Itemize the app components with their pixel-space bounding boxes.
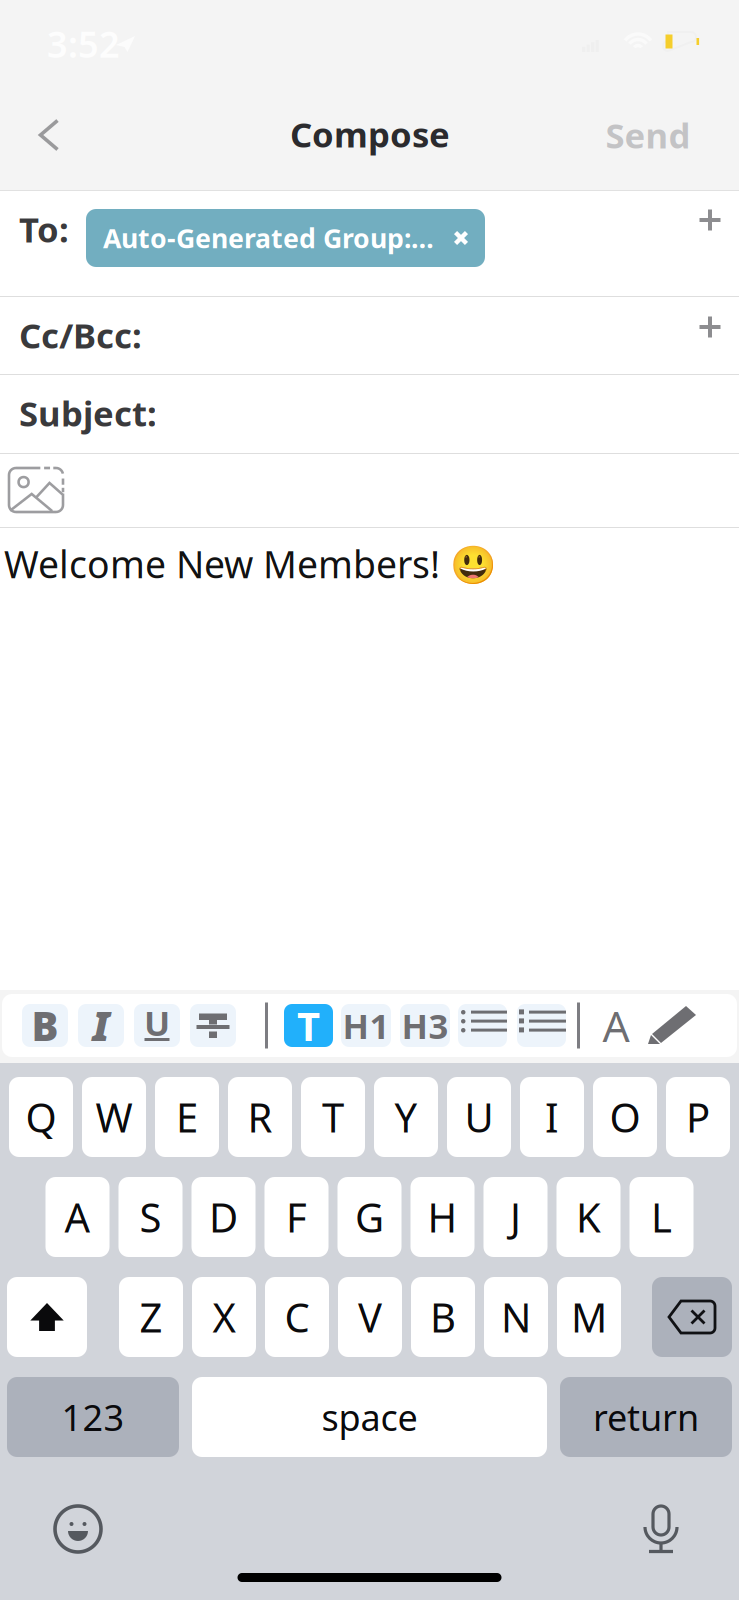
- button[interactable]: N: [484, 1277, 548, 1357]
- button[interactable]: 123: [7, 1377, 179, 1457]
- button[interactable]: G: [337, 1177, 401, 1257]
- staticText: I: [92, 999, 109, 1052]
- button[interactable]: Add Cc or Bcc: [675, 297, 739, 357]
- button[interactable]: P: [666, 1077, 730, 1157]
- staticText: S: [139, 1190, 161, 1243]
- button[interactable]: L: [629, 1177, 693, 1257]
- button[interactable]: H: [410, 1177, 474, 1257]
- staticText: J: [510, 1190, 521, 1243]
- staticText: L: [651, 1190, 672, 1243]
- button[interactable]: A: [45, 1177, 109, 1257]
- button[interactable]: B: [411, 1277, 475, 1357]
- staticText: Q: [25, 1090, 56, 1143]
- button[interactable]: H1: [341, 1004, 391, 1047]
- staticText: V: [358, 1290, 382, 1343]
- staticText: T: [322, 1090, 344, 1143]
- staticText: H: [427, 1190, 457, 1243]
- button[interactable]: V: [338, 1277, 402, 1357]
- button[interactable]: [458, 1004, 507, 1047]
- staticText: U: [144, 999, 170, 1045]
- button[interactable]: Q: [9, 1077, 73, 1157]
- staticText: R: [247, 1090, 272, 1143]
- staticText: A: [602, 997, 629, 1054]
- staticText: P: [686, 1090, 710, 1143]
- staticText: To:: [19, 206, 69, 252]
- button[interactable]: Insert photo: [0, 458, 72, 522]
- button[interactable]: T: [301, 1077, 365, 1157]
- staticText: A: [64, 1190, 90, 1243]
- staticText: return: [593, 1393, 699, 1441]
- button[interactable]: D: [191, 1177, 255, 1257]
- staticText: X: [212, 1290, 235, 1343]
- staticText: K: [576, 1190, 601, 1243]
- button[interactable]: M: [557, 1277, 621, 1357]
- staticText: Z: [139, 1290, 162, 1343]
- button[interactable]: [517, 1004, 566, 1047]
- staticText: B: [31, 999, 58, 1052]
- button[interactable]: [190, 1004, 236, 1047]
- staticText: W: [95, 1090, 132, 1143]
- staticText: O: [609, 1090, 640, 1143]
- button[interactable]: A: [590, 1004, 642, 1047]
- button[interactable]: J: [483, 1177, 547, 1257]
- button[interactable]: B: [22, 1004, 68, 1047]
- staticText: Welcome New Members! 😃: [4, 539, 496, 589]
- button[interactable]: S: [118, 1177, 182, 1257]
- staticText: D: [209, 1190, 238, 1243]
- button[interactable]: H3: [400, 1004, 450, 1047]
- button[interactable]: U: [134, 1004, 180, 1047]
- button[interactable]: X: [192, 1277, 256, 1357]
- button[interactable]: [646, 1004, 698, 1047]
- button[interactable]: Emoji keyboard: [55, 1506, 101, 1552]
- staticText: Y: [394, 1090, 417, 1143]
- button[interactable]: return: [560, 1377, 732, 1457]
- staticText: B: [430, 1290, 456, 1343]
- staticText: Auto-Generated Group: Account: [103, 220, 437, 256]
- staticText: N: [501, 1290, 531, 1343]
- button[interactable]: Send: [578, 91, 718, 179]
- button[interactable]: R: [228, 1077, 292, 1157]
- button[interactable]: E: [155, 1077, 219, 1157]
- button[interactable]: Shift: [7, 1277, 87, 1357]
- staticText: space: [321, 1393, 417, 1441]
- staticText: Cc/Bcc:: [19, 312, 142, 358]
- staticText: G: [355, 1190, 384, 1243]
- button[interactable]: U: [447, 1077, 511, 1157]
- staticText: Send: [605, 112, 690, 158]
- button[interactable]: K: [556, 1177, 620, 1257]
- staticText: I: [545, 1090, 559, 1143]
- button[interactable]: F: [264, 1177, 328, 1257]
- button[interactable]: Dictate: [641, 1504, 681, 1554]
- staticText: T: [297, 999, 320, 1052]
- button[interactable]: Y: [374, 1077, 438, 1157]
- button[interactable]: T: [284, 1004, 333, 1047]
- button[interactable]: I: [78, 1004, 124, 1047]
- staticText: F: [286, 1190, 307, 1243]
- button[interactable]: Add recipient: [675, 188, 739, 252]
- staticText: 3:52: [47, 20, 120, 68]
- button[interactable]: C: [265, 1277, 329, 1357]
- button[interactable]: Back: [3, 91, 95, 179]
- staticText: 123: [61, 1393, 124, 1441]
- staticText: U: [464, 1090, 493, 1143]
- staticText: C: [284, 1290, 309, 1343]
- staticText: H3: [401, 1002, 448, 1048]
- button[interactable]: space: [192, 1377, 547, 1457]
- button[interactable]: Delete: [652, 1277, 732, 1357]
- button[interactable]: I: [520, 1077, 584, 1157]
- staticText: Compose: [290, 111, 450, 157]
- staticText: M: [571, 1290, 607, 1343]
- button[interactable]: O: [593, 1077, 657, 1157]
- staticText: Subject:: [19, 390, 157, 436]
- button[interactable]: W: [82, 1077, 146, 1157]
- button[interactable]: Z: [119, 1277, 183, 1357]
- staticText: E: [176, 1090, 198, 1143]
- staticText: H1: [342, 1002, 389, 1048]
